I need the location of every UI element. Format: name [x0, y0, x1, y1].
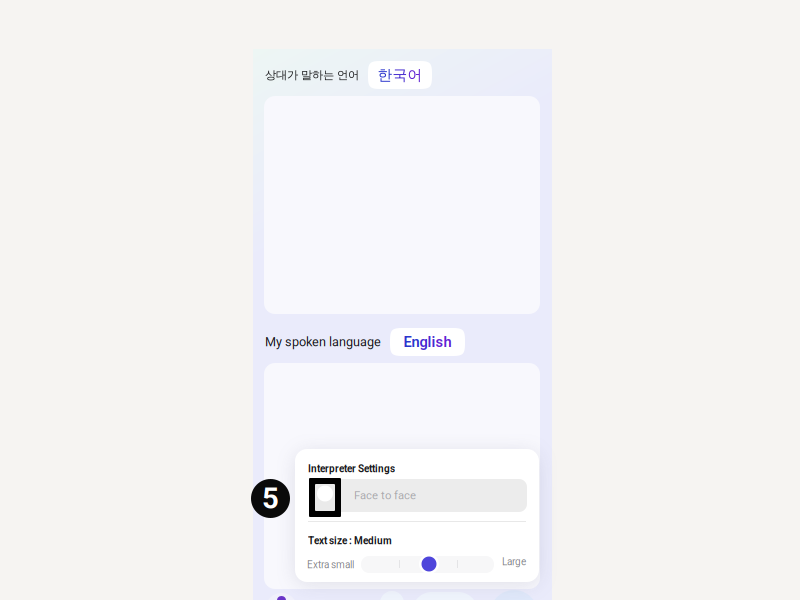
staticText: 국: [392, 66, 407, 84]
staticText: Extra small: [307, 559, 354, 571]
staticText: gli: [419, 333, 435, 351]
staticText: Interpreter Settings: [308, 463, 395, 475]
button[interactable]: Swap languages: [380, 591, 404, 600]
button[interactable]: More options: [490, 590, 538, 600]
button[interactable]: Interpreter mode: [309, 478, 341, 517]
button[interactable]: Transcript: [412, 592, 478, 600]
staticText: 어: [407, 66, 422, 84]
button[interactable]: Record: [266, 593, 297, 600]
staticText: En: [403, 333, 419, 351]
staticText: 한: [377, 66, 392, 84]
staticText: sh: [435, 333, 451, 351]
staticText: 상대가 말하는 언어: [265, 68, 359, 82]
staticText: Large: [502, 556, 526, 568]
staticText: 5: [262, 481, 279, 516]
staticText: Face to face: [354, 489, 416, 502]
staticText: My spoken language: [265, 335, 381, 349]
button[interactable]: En: [390, 328, 465, 356]
staticText: Text size : Medium: [308, 535, 392, 547]
button[interactable]: 한: [368, 61, 432, 89]
